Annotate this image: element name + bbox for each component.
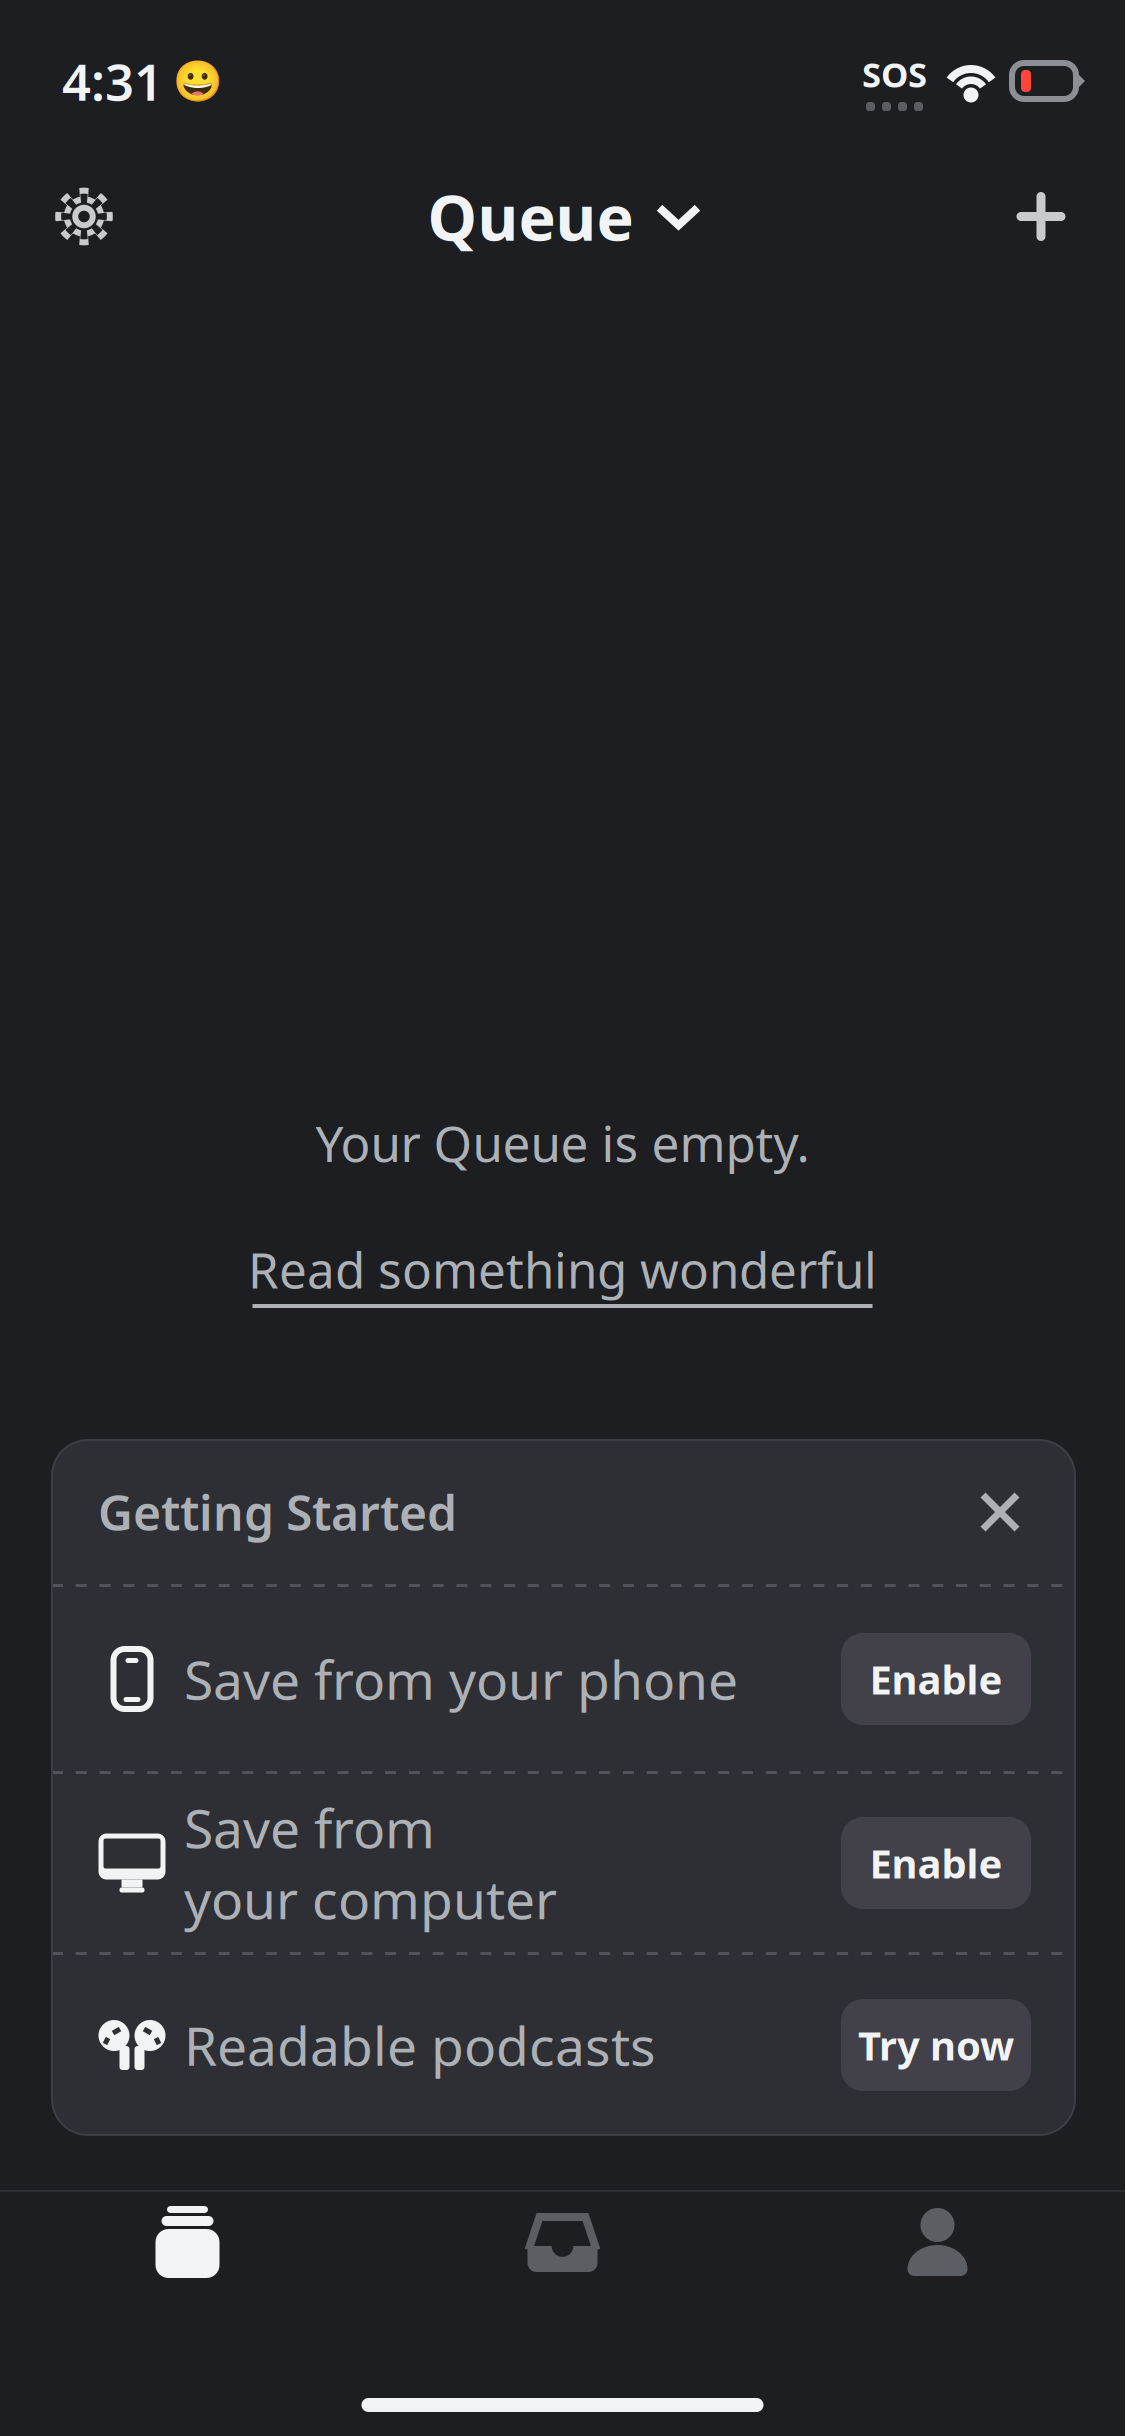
- staticText: Enable: [869, 1652, 1002, 1706]
- button[interactable]: Enable: [841, 1633, 1031, 1725]
- staticText: Read something wonderful: [248, 1236, 877, 1302]
- staticText: Try now: [858, 2018, 1014, 2072]
- staticText: 😀: [173, 58, 223, 104]
- button[interactable]: Profile: [750, 2194, 1125, 2290]
- staticText: Getting Started: [98, 1480, 457, 1544]
- staticText: 4:31: [62, 47, 163, 115]
- staticText: Your Queue is empty.: [315, 1110, 809, 1175]
- button[interactable]: Inbox: [375, 2194, 750, 2290]
- staticText: your computer: [184, 1863, 557, 1934]
- button[interactable]: Try now: [841, 1999, 1031, 2091]
- staticText: SOS: [862, 51, 927, 97]
- staticText: Queue: [427, 175, 633, 258]
- button[interactable]: Queue: [419, 163, 705, 270]
- button[interactable]: Add: [985, 160, 1097, 272]
- button[interactable]: Queue: [0, 2194, 375, 2290]
- button[interactable]: Settings: [28, 160, 140, 272]
- button[interactable]: Enable: [841, 1817, 1031, 1909]
- staticText: Save from your phone: [184, 1644, 738, 1714]
- button[interactable]: Dismiss Getting Started: [961, 1473, 1039, 1551]
- staticText: Enable: [869, 1836, 1002, 1890]
- staticText: Save from: [184, 1792, 435, 1863]
- staticText: Readable podcasts: [184, 2010, 656, 2080]
- button[interactable]: Read something wonderful: [248, 1236, 877, 1308]
